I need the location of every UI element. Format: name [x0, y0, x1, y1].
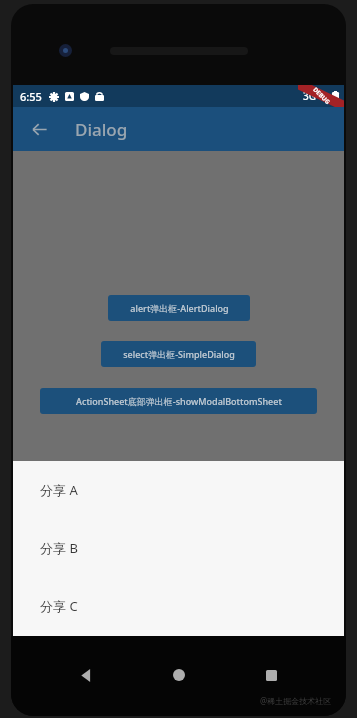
- button[interactable]: alert弹出框-AlertDialog: [108, 295, 250, 321]
- staticText: 3G: [303, 89, 316, 103]
- staticText: 分享 B: [40, 539, 78, 557]
- staticText: 分享 C: [40, 597, 78, 615]
- staticText: DEBUG: [311, 86, 332, 106]
- button[interactable]: Back: [21, 111, 57, 147]
- button[interactable]: Home: [162, 658, 196, 692]
- button[interactable]: ActionSheet底部弹出框-showModalBottomSheet: [40, 388, 317, 414]
- button[interactable]: select弹出框-SimpleDialog: [101, 341, 256, 367]
- button[interactable]: 分享 B: [13, 519, 344, 577]
- button[interactable]: Recents: [254, 658, 288, 692]
- staticText: ActionSheet底部弹出框-showModalBottomSheet: [76, 395, 282, 407]
- staticText: alert弹出框-AlertDialog: [130, 302, 229, 314]
- staticText: Dialog: [75, 118, 128, 141]
- staticText: 6:55: [20, 89, 42, 104]
- button[interactable]: 分享 A: [13, 461, 344, 519]
- staticText: @稀土掘金技术社区: [260, 695, 332, 706]
- button[interactable]: 分享 C: [13, 577, 344, 635]
- staticText: select弹出框-SimpleDialog: [123, 348, 235, 360]
- staticText: 分享 A: [40, 481, 78, 499]
- button[interactable]: Back: [69, 658, 103, 692]
